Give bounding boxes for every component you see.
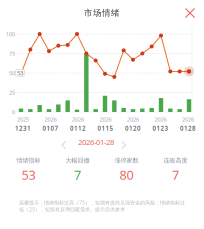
staticText: 53 bbox=[21, 166, 35, 183]
staticText: 0128 bbox=[180, 124, 196, 132]
staticText: 大幅回撤 bbox=[65, 156, 89, 164]
staticText: 2026 bbox=[127, 115, 139, 123]
staticText: 1231 bbox=[15, 124, 31, 132]
staticText: 25 bbox=[9, 89, 15, 96]
button[interactable]: Next day bbox=[117, 137, 130, 152]
staticText: 0 bbox=[12, 108, 15, 116]
staticText: 情绪指标 bbox=[16, 156, 40, 164]
button[interactable]: Close bbox=[179, 2, 200, 23]
staticText: 80 bbox=[119, 166, 133, 183]
staticText: 2026 bbox=[99, 115, 111, 123]
staticText: 75 bbox=[9, 50, 15, 57]
staticText: 2026 bbox=[44, 115, 56, 123]
staticText: 2026 bbox=[154, 115, 166, 123]
staticText: 0123 bbox=[152, 124, 168, 132]
staticText: 7 bbox=[74, 166, 81, 183]
button[interactable]: Previous day bbox=[57, 137, 70, 152]
staticText: 温馨提示：情绪指标过高（75），短期有提前兑现资金的风险；情绪指标过低（25），… bbox=[19, 199, 185, 213]
staticText: 涨停家数 bbox=[114, 156, 138, 164]
staticText: 0112 bbox=[70, 124, 86, 132]
staticText: 2026 bbox=[72, 115, 84, 123]
staticText: 0120 bbox=[125, 124, 141, 132]
staticText: 100 bbox=[6, 30, 15, 38]
button[interactable]: 2026-01-28 bbox=[74, 136, 118, 148]
staticText: 市场情绪 bbox=[84, 7, 120, 18]
staticText: 7 bbox=[172, 166, 179, 183]
staticText: 2026-01-28 bbox=[78, 137, 114, 147]
staticText: 53 bbox=[17, 69, 23, 77]
staticText: 2026 bbox=[182, 115, 194, 123]
staticText: 50 bbox=[9, 69, 15, 77]
staticText: 连板高度 bbox=[163, 156, 187, 164]
staticText: 0107 bbox=[42, 124, 58, 132]
staticText: 2025 bbox=[17, 115, 29, 123]
staticText: 0115 bbox=[97, 124, 113, 132]
